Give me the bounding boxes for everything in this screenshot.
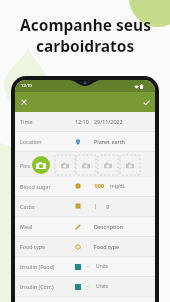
button[interactable]: Insulin (Corr.) <box>15 277 155 297</box>
button[interactable]: Close <box>17 95 31 109</box>
staticText: Units <box>96 283 109 290</box>
button[interactable]: Take picture <box>32 156 50 174</box>
staticText: carboidratos <box>36 35 135 56</box>
button[interactable]: Time <box>15 112 155 132</box>
button[interactable]: Add picture <box>55 155 75 175</box>
button[interactable]: Food type <box>15 237 155 257</box>
button[interactable]: Location <box>15 132 155 152</box>
button[interactable]: Add picture <box>120 155 140 175</box>
staticText: Pics <box>20 162 30 169</box>
staticText: 12:10 <box>75 118 89 125</box>
staticText: Time <box>20 118 33 125</box>
button[interactable]: Carbs <box>15 197 155 217</box>
staticText: Planet earth <box>94 138 125 145</box>
staticText: Food type <box>20 243 46 250</box>
button[interactable]: Blood sugar <box>15 177 155 197</box>
button[interactable]: Add picture <box>76 155 96 175</box>
staticText: 29/11/2022 <box>94 118 123 125</box>
staticText: Food type <box>94 243 120 250</box>
staticText: 12:10 <box>21 83 32 89</box>
button[interactable]: Save <box>139 95 153 109</box>
staticText: | <box>94 202 98 210</box>
staticText: Meal <box>20 223 33 230</box>
staticText: - <box>87 263 89 270</box>
staticText: - <box>87 283 89 290</box>
staticText: g <box>106 203 110 210</box>
button[interactable]: Insulin (Food) <box>15 257 155 277</box>
staticText: mg/dL <box>110 183 126 190</box>
staticText: Location <box>20 138 42 145</box>
staticText: Insulin (Food) <box>20 263 55 270</box>
button[interactable]: Meal <box>15 217 155 237</box>
staticText: Units <box>96 263 109 270</box>
staticText: Description <box>94 223 124 230</box>
staticText: 100 <box>94 182 105 190</box>
staticText: Insulin (Corr.) <box>20 283 54 290</box>
staticText: Blood sugar <box>20 183 51 190</box>
staticText: Acompanhe seus <box>20 14 151 35</box>
staticText: Carbs <box>20 203 35 210</box>
button[interactable]: Add picture <box>98 155 118 175</box>
